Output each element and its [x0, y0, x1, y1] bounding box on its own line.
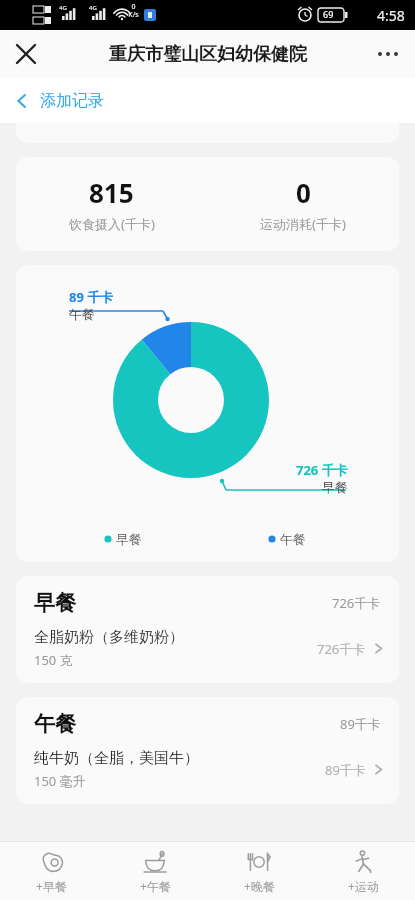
staticText: 全脂奶粉（多维奶粉）: [34, 628, 184, 647]
staticText: 815: [89, 175, 134, 210]
staticText: 0: [296, 175, 311, 210]
staticText: 午餐: [280, 531, 306, 547]
button[interactable]: Close: [6, 34, 46, 74]
staticText: 饮食摄入(千卡): [69, 215, 155, 233]
staticText: 运动消耗(千卡): [260, 215, 346, 233]
staticText: 早餐: [322, 479, 348, 495]
staticText: 89千卡: [340, 715, 381, 733]
button[interactable]: +午餐: [103, 849, 207, 894]
staticText: +午餐: [140, 878, 171, 894]
button[interactable]: More options: [369, 34, 409, 74]
staticText: +早餐: [36, 878, 67, 894]
button[interactable]: +晚餐: [207, 849, 311, 894]
staticText: 89千卡: [325, 761, 366, 779]
staticText: 726千卡: [332, 594, 381, 612]
button[interactable]: 早餐: [16, 576, 399, 683]
staticText: +运动: [348, 878, 379, 894]
staticText: 纯牛奶（全脂，美国牛）: [34, 749, 199, 768]
staticText: 726 千卡: [296, 461, 348, 479]
staticText: 150 克: [34, 651, 73, 669]
staticText: 午餐: [34, 711, 76, 737]
button[interactable]: 添加记录: [0, 78, 415, 123]
staticText: 150 毫升: [34, 772, 86, 790]
staticText: 早餐: [34, 590, 76, 616]
staticText: 89 千卡: [69, 288, 114, 306]
button[interactable]: +运动: [311, 849, 415, 894]
button[interactable]: 午餐: [16, 697, 399, 804]
staticText: 添加记录: [40, 91, 104, 111]
staticText: 4G: [89, 4, 97, 12]
staticText: 午餐: [69, 306, 95, 322]
staticText: 69: [323, 8, 334, 20]
staticText: 早餐: [116, 531, 142, 547]
staticText: 726千卡: [317, 640, 366, 658]
staticText: +晚餐: [244, 878, 275, 894]
button[interactable]: +早餐: [0, 849, 103, 894]
staticText: 重庆市璧山区妇幼保健院: [109, 43, 307, 66]
staticText: 0 K/s: [128, 2, 139, 19]
staticText: 4G: [59, 4, 67, 12]
staticText: 4:58: [377, 6, 405, 25]
